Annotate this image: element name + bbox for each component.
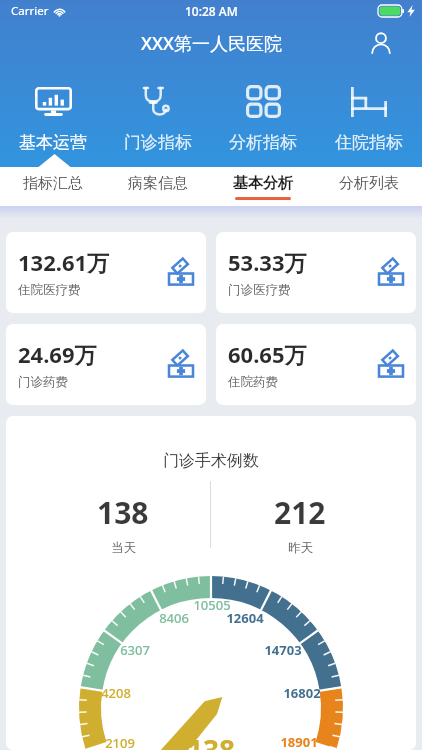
staticText: 基本运营	[19, 132, 87, 153]
staticText: 12604	[215, 609, 275, 627]
staticText: 分析指标	[229, 132, 297, 153]
staticText: Carrier	[11, 3, 49, 19]
staticText: 住院指标	[335, 132, 403, 153]
staticText: 分析列表	[339, 174, 399, 193]
staticText: 门诊指标	[124, 132, 192, 153]
staticText: 2109	[90, 734, 150, 750]
staticText: 6307	[105, 641, 165, 659]
staticText: 门诊医疗费	[228, 282, 291, 298]
button[interactable]: 基本分析	[210, 167, 316, 206]
button[interactable]: 53.33万	[216, 232, 416, 313]
staticText: 18901	[269, 733, 329, 750]
staticText: 门诊药费	[18, 374, 68, 390]
button[interactable]: 60.65万	[216, 324, 416, 405]
staticText: 8406	[144, 609, 204, 627]
staticText: 14703	[253, 641, 313, 659]
button[interactable]: Account	[369, 31, 393, 55]
button[interactable]: 基本运营	[0, 85, 105, 153]
button[interactable]: 病案信息	[105, 167, 210, 206]
staticText: 住院医疗费	[18, 282, 81, 298]
staticText: 53.33万	[228, 247, 307, 277]
staticText: 132.61万	[18, 247, 110, 277]
staticText: 住院药费	[228, 374, 278, 390]
staticText: 10505	[182, 596, 242, 614]
staticText: 138	[97, 492, 149, 533]
staticText: 16802	[272, 684, 332, 702]
staticText: 60.65万	[228, 339, 307, 369]
button[interactable]: 132.61万	[6, 232, 206, 313]
staticText: 当天	[111, 540, 136, 556]
staticText: 24.69万	[18, 339, 97, 369]
button[interactable]: 门诊指标	[105, 85, 210, 153]
staticText: 病案信息	[128, 174, 188, 193]
button[interactable]: 分析指标	[210, 85, 316, 153]
staticText: XXX第一人民医院	[141, 31, 282, 56]
button[interactable]: 24.69万	[6, 324, 206, 405]
staticText: 138	[181, 731, 241, 750]
staticText: 昨天	[288, 540, 313, 556]
button[interactable]: 分析列表	[316, 167, 422, 206]
staticText: 门诊手术例数	[6, 451, 416, 471]
staticText: 指标汇总	[23, 174, 83, 193]
staticText: 212	[274, 492, 326, 533]
staticText: 10:28 AM	[185, 3, 238, 19]
staticText: 4208	[86, 684, 146, 702]
button[interactable]: 住院指标	[316, 85, 422, 153]
staticText: 基本分析	[233, 174, 293, 193]
button[interactable]: 指标汇总	[0, 167, 105, 206]
